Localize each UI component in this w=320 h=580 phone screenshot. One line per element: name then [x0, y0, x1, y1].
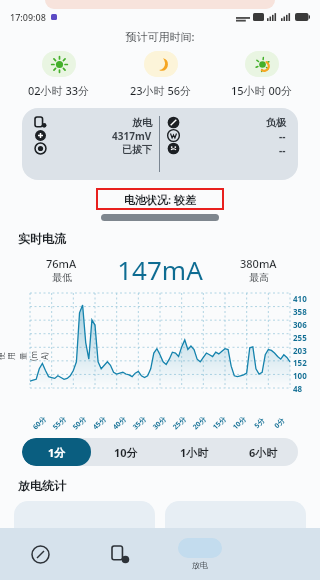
staticText: 23小时 56分: [130, 83, 192, 98]
staticText: 410: [293, 293, 307, 304]
staticText: 30分: [151, 414, 169, 432]
staticText: 380mA: [240, 256, 277, 271]
staticText: --: [279, 129, 286, 143]
staticText: 5分: [252, 415, 268, 431]
staticText: 35分: [131, 414, 149, 432]
button[interactable]: 15小时 00分: [211, 51, 312, 98]
staticText: 使用量 (mA): [0, 349, 50, 363]
button[interactable]: 02小时 33分: [8, 51, 110, 98]
staticText: 实时电流: [18, 231, 66, 246]
staticText: 17:09:08: [10, 11, 46, 23]
staticText: 20分: [191, 414, 209, 432]
button[interactable]: 放电: [22, 108, 298, 180]
staticText: 25分: [171, 414, 189, 432]
button[interactable]: [165, 501, 306, 541]
button[interactable]: 添加电池: [80, 528, 160, 580]
staticText: 306: [293, 319, 307, 330]
staticText: 1分: [48, 445, 66, 460]
staticText: 放电: [132, 116, 152, 129]
staticText: 02小时 33分: [28, 83, 90, 98]
staticText: 48: [293, 383, 303, 394]
staticText: 76mA: [46, 256, 77, 271]
staticText: 10分: [231, 414, 249, 432]
staticText: 15分: [211, 414, 229, 432]
staticText: 电池状况: 较差: [124, 192, 196, 207]
staticText: 6小时: [249, 445, 278, 460]
button[interactable]: 概览: [0, 528, 80, 580]
staticText: 45分: [91, 414, 109, 432]
staticText: 0分: [272, 415, 288, 431]
staticText: 15小时 00分: [231, 83, 293, 98]
button[interactable]: 1分: [22, 438, 91, 466]
staticText: 152: [293, 357, 307, 368]
staticText: 预计可用时间:: [0, 29, 320, 44]
staticText: 60分: [31, 414, 49, 432]
button[interactable]: 23小时 56分: [110, 51, 211, 98]
staticText: 55分: [51, 414, 69, 432]
button[interactable]: 1小时: [160, 438, 229, 466]
button[interactable]: 电池状况: 较差: [98, 190, 222, 208]
staticText: 100: [293, 370, 307, 381]
staticText: 最高: [249, 271, 269, 284]
staticText: 放电统计: [18, 478, 66, 493]
staticText: 358: [293, 306, 307, 317]
staticText: 已拔下: [122, 143, 152, 156]
staticText: 147mA: [101, 252, 219, 287]
staticText: 203: [293, 345, 307, 356]
staticText: 255: [293, 332, 307, 343]
staticText: 10分: [114, 445, 138, 460]
staticText: 1小时: [180, 445, 209, 460]
button[interactable]: [14, 501, 155, 541]
button[interactable]: 放电: [160, 528, 240, 580]
button[interactable]: 10分: [91, 438, 160, 466]
staticText: 40分: [111, 414, 129, 432]
staticText: --: [279, 143, 286, 157]
staticText: 负极: [266, 116, 286, 129]
staticText: 4317mV: [112, 129, 152, 143]
staticText: 50分: [71, 414, 89, 432]
button[interactable]: 6小时: [229, 438, 298, 466]
staticText: 放电: [192, 560, 208, 570]
staticText: 最低: [52, 271, 72, 284]
